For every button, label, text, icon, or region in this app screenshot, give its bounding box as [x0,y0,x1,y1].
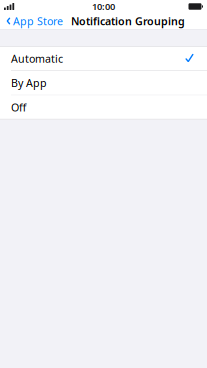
staticText: App Store [13,14,63,28]
button[interactable]: Automatic [0,46,207,70]
staticText: Automatic [11,51,63,66]
staticText: 10:00 [92,0,115,13]
button[interactable]: Off [0,95,207,119]
staticText: Notification Grouping [71,14,185,28]
button[interactable]: By App [0,71,207,95]
staticText: Off [11,100,26,114]
staticText: By App [11,76,47,90]
button[interactable]: Back to App Store [0,11,67,31]
